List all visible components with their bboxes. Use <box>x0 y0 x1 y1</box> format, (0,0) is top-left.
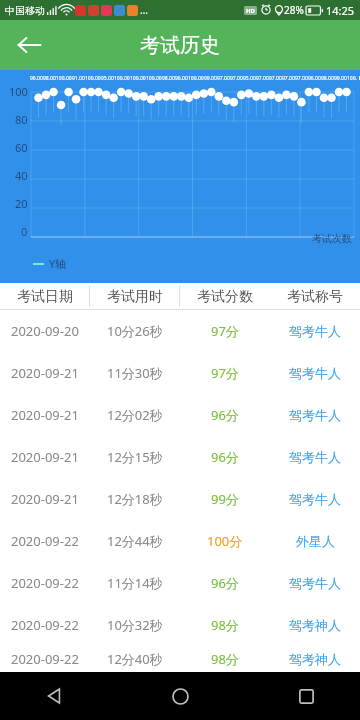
staticText: 99分 <box>211 490 239 508</box>
staticText: 98.00 <box>162 75 175 82</box>
button[interactable]: Back <box>30 672 78 720</box>
staticText: 2020-09-21 <box>11 448 79 466</box>
staticText: 99.00 <box>204 75 217 82</box>
staticText: 考试用时 <box>107 288 163 306</box>
staticText: 97.00 <box>295 75 308 82</box>
staticText: 60 <box>15 140 28 155</box>
staticText: 驾考牛人 <box>289 491 341 507</box>
staticText: … <box>140 3 148 17</box>
staticText: 2020-09-21 <box>11 490 79 508</box>
staticText: 96.00 <box>175 75 188 82</box>
button[interactable]: 2020-09-20 <box>0 310 360 352</box>
staticText: 96.00 <box>30 75 43 82</box>
staticText: 96分 <box>211 406 239 424</box>
staticText: 考试次数 <box>312 232 352 245</box>
staticText: 100.00 <box>146 75 162 82</box>
staticText: Y轴 <box>49 256 67 271</box>
staticText: 考试日期 <box>17 288 73 306</box>
staticText: 12分40秒 <box>107 650 163 668</box>
staticText: 2020-09-22 <box>11 574 79 592</box>
staticText: 考试分数 <box>197 288 253 306</box>
staticText: 95.00 <box>101 75 114 82</box>
staticText: 12分18秒 <box>107 490 163 508</box>
staticText: 97分 <box>211 322 239 340</box>
staticText: 95.00 <box>243 75 256 82</box>
button[interactable]: 2020-09-22 <box>0 520 360 562</box>
staticText: 驾考牛人 <box>289 323 341 339</box>
staticText: 28% <box>284 3 304 17</box>
staticText: 97.00 <box>269 75 282 82</box>
staticText: 驾考神人 <box>289 651 341 667</box>
staticText: 99.00 <box>334 75 347 82</box>
button[interactable]: 2020-09-21 <box>0 436 360 478</box>
staticText: 驾考牛人 <box>289 407 341 423</box>
staticText: 97分 <box>211 364 239 382</box>
staticText: 驾考神人 <box>289 617 341 633</box>
staticText: 96分 <box>211 448 239 466</box>
staticText: 100.00 <box>188 75 204 82</box>
button[interactable]: Home <box>156 672 204 720</box>
button[interactable]: Recent apps <box>282 672 330 720</box>
staticText: 12分44秒 <box>107 532 163 550</box>
staticText: 2020-09-20 <box>11 322 79 340</box>
staticText: 2020-09-22 <box>11 616 79 634</box>
staticText: 100.00 <box>56 75 72 82</box>
staticText: 驾考牛人 <box>289 365 341 381</box>
button[interactable]: 2020-09-22 <box>0 646 360 672</box>
staticText: 驾考牛人 <box>289 449 341 465</box>
staticText: 中国移动 <box>5 4 45 17</box>
staticText: 0 <box>21 224 28 239</box>
staticText: 10分26秒 <box>107 322 163 340</box>
staticText: 2020-09-22 <box>11 650 79 668</box>
staticText: 97.00 <box>282 75 295 82</box>
staticText: 98分 <box>211 650 239 668</box>
button[interactable]: 2020-09-22 <box>0 562 360 604</box>
staticText: 98.00 <box>43 75 56 82</box>
staticText: 96.00 <box>308 75 321 82</box>
staticText: 97.00 <box>230 75 243 82</box>
staticText: 外星人 <box>296 533 335 549</box>
staticText: 40 <box>15 168 28 183</box>
staticText: 2020-09-21 <box>11 406 79 424</box>
staticText: 考试称号 <box>287 288 343 306</box>
staticText: 12分15秒 <box>107 448 163 466</box>
staticText: 97.00 <box>217 75 230 82</box>
staticText: 20 <box>15 196 28 211</box>
staticText: 10分32秒 <box>107 616 163 634</box>
staticText: 2020-09-22 <box>11 532 79 550</box>
button[interactable]: 2020-09-21 <box>0 352 360 394</box>
staticText: HD <box>246 7 255 15</box>
staticText: 12分02秒 <box>107 406 163 424</box>
staticText: 考试历史 <box>140 33 220 58</box>
staticText: 100.00 <box>130 75 146 82</box>
button[interactable]: 2020-09-22 <box>0 604 360 646</box>
staticText: 100.00 <box>347 75 359 82</box>
staticText: 98.00 <box>321 75 334 82</box>
button[interactable]: 2020-09-21 <box>0 394 360 436</box>
staticText: 91.00 <box>72 75 85 82</box>
staticText: 100.00 <box>85 75 101 82</box>
staticText: 驾考牛人 <box>289 575 341 591</box>
staticText: 80 <box>15 112 28 127</box>
staticText: 100 <box>9 84 28 99</box>
staticText: 100.00 <box>114 75 130 82</box>
staticText: 11分14秒 <box>107 574 163 592</box>
staticText: 97.00 <box>256 75 269 82</box>
staticText: 14:25 <box>326 3 355 18</box>
button[interactable]: Back <box>6 22 52 68</box>
staticText: 11分30秒 <box>107 364 163 382</box>
staticText: 96分 <box>211 574 239 592</box>
staticText: 2020-09-21 <box>11 364 79 382</box>
staticText: 100分 <box>207 532 243 550</box>
staticText: 98分 <box>211 616 239 634</box>
button[interactable]: 2020-09-21 <box>0 478 360 520</box>
